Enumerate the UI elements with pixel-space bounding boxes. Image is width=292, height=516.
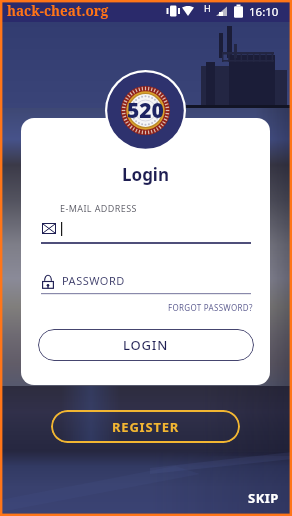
staticText: FORGOT PASSWORD? (168, 302, 253, 313)
staticText: Login (122, 163, 170, 186)
staticText: SKIP (248, 489, 279, 507)
staticText: hack-cheat.org (7, 2, 109, 20)
button[interactable]: SKIP (240, 487, 286, 509)
button[interactable] (41, 218, 251, 246)
staticText: 16:10 (249, 4, 279, 20)
button[interactable]: LOGIN (38, 329, 254, 361)
button[interactable]: PASSWORD (41, 270, 251, 296)
staticText: PASSWORD (62, 273, 125, 288)
staticText: LOGIN (123, 336, 169, 354)
button[interactable]: FORGOT PASSWORD? (165, 300, 256, 315)
staticText: 520 (127, 96, 164, 125)
staticText: REGISTER (112, 418, 180, 436)
button[interactable]: REGISTER (51, 410, 240, 443)
staticText: H (204, 2, 211, 14)
staticText: E-MAIL ADDRESS (60, 202, 137, 214)
